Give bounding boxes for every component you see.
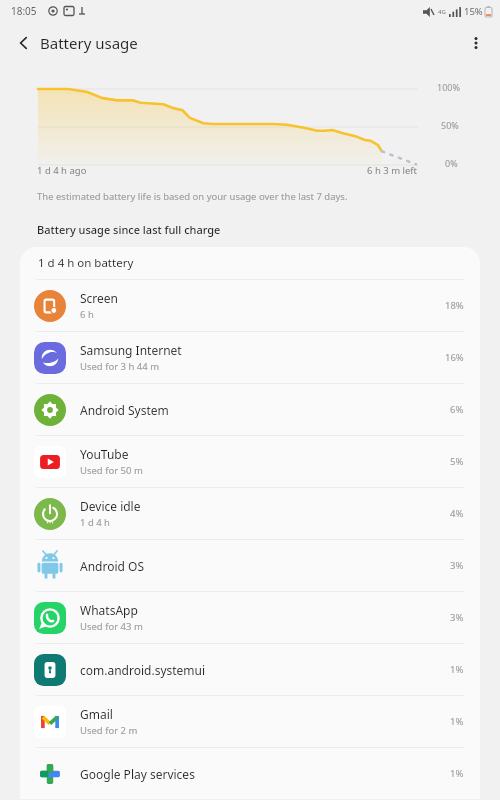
button[interactable]: Gmail xyxy=(20,696,480,747)
staticText: 15% xyxy=(464,5,483,18)
button[interactable]: Samsung Internet xyxy=(20,332,480,383)
staticText: 6 h xyxy=(80,308,94,321)
staticText: Device idle xyxy=(80,498,141,514)
staticText: Battery usage since last full charge xyxy=(37,222,221,237)
staticText: Battery usage xyxy=(40,33,138,53)
staticText: 1 d 4 h xyxy=(80,516,110,529)
staticText: The estimated battery life is based on y… xyxy=(37,190,348,203)
staticText: 100% xyxy=(437,81,460,93)
staticText: 1% xyxy=(450,715,464,728)
staticText: Used for 2 m xyxy=(80,724,138,737)
staticText: 1 d 4 h on battery xyxy=(38,255,134,271)
staticText: 1% xyxy=(450,767,464,780)
staticText: 3% xyxy=(450,559,464,572)
staticText: 1% xyxy=(450,663,464,676)
staticText: Used for 50 m xyxy=(80,464,143,477)
button[interactable]: Screen xyxy=(20,280,480,331)
staticText: Gmail xyxy=(80,706,113,722)
staticText: Android OS xyxy=(80,558,144,574)
staticText: Android System xyxy=(80,402,169,418)
button[interactable]: Android OS xyxy=(20,540,480,591)
button[interactable]: Device idle xyxy=(20,488,480,539)
staticText: 0% xyxy=(445,157,458,169)
staticText: WhatsApp xyxy=(80,602,138,618)
staticText: Used for 3 h 44 m xyxy=(80,360,160,373)
staticText: com.android.systemui xyxy=(80,662,206,678)
staticText: 4G xyxy=(438,8,446,16)
button[interactable]: Android System xyxy=(20,384,480,435)
staticText: Used for 43 m xyxy=(80,620,143,633)
staticText: 16% xyxy=(445,351,464,364)
staticText: Screen xyxy=(80,290,119,306)
staticText: 18% xyxy=(445,299,464,312)
staticText: 4% xyxy=(450,507,464,520)
button[interactable]: Google Play services xyxy=(20,748,480,799)
staticText: 1 d 4 h ago xyxy=(37,164,87,177)
button[interactable]: WhatsApp xyxy=(20,592,480,643)
staticText: 6% xyxy=(450,403,464,416)
button[interactable]: More options xyxy=(460,27,492,59)
button[interactable]: com.android.systemui xyxy=(20,644,480,695)
staticText: 18:05 xyxy=(11,4,37,18)
staticText: 3% xyxy=(450,611,464,624)
staticText: 5% xyxy=(450,455,464,468)
staticText: Samsung Internet xyxy=(80,342,182,358)
staticText: 6 h 3 m left xyxy=(367,164,418,177)
staticText: Google Play services xyxy=(80,766,195,782)
button[interactable]: YouTube xyxy=(20,436,480,487)
staticText: YouTube xyxy=(80,446,129,462)
staticText: 50% xyxy=(441,119,459,131)
button[interactable]: Back xyxy=(8,27,40,59)
